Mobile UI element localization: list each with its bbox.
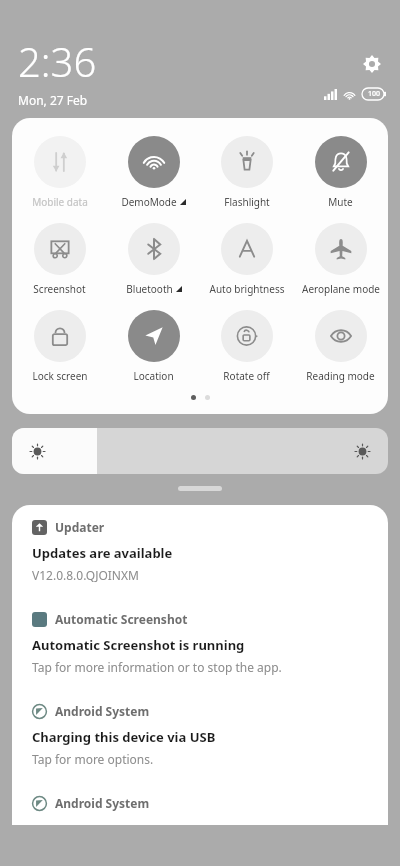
staticText: Flashlight [224, 195, 270, 209]
button[interactable]: DemoMode [107, 134, 200, 211]
button[interactable]: Automatic Screenshot [12, 597, 388, 689]
staticText: Tap for more options. [32, 751, 154, 767]
button[interactable]: Mute [294, 134, 387, 211]
staticText: Screenshot [33, 282, 86, 296]
staticText: Bluetooth [126, 282, 173, 296]
staticText: 100 [368, 89, 381, 99]
staticText: V12.0.8.0.QJOINXM [32, 567, 139, 583]
button[interactable]: Rotate off [200, 308, 293, 385]
button[interactable]: Mobile data [13, 134, 106, 211]
button[interactable]: Settings [358, 50, 386, 78]
staticText: Automatic Screenshot [55, 611, 188, 627]
button[interactable]: Screenshot [13, 221, 106, 298]
staticText: Mon, 27 Feb [18, 92, 88, 108]
button[interactable]: Android System [12, 689, 388, 781]
button[interactable]: Flashlight [200, 134, 293, 211]
staticText: Android System [55, 703, 150, 719]
staticText: Updater [55, 519, 105, 535]
staticText: Auto brightness [209, 282, 285, 296]
staticText: Mute [328, 195, 353, 209]
staticText: Aeroplane mode [302, 282, 380, 296]
button[interactable]: Auto brightness [200, 221, 293, 298]
button[interactable]: Location [107, 308, 200, 385]
staticText: DemoMode [121, 195, 177, 209]
button[interactable]: Android System [12, 781, 388, 825]
staticText: Reading mode [306, 369, 375, 383]
button[interactable]: Aeroplane mode [294, 221, 387, 298]
staticText: Rotate off [223, 369, 270, 383]
button[interactable]: Bluetooth [107, 221, 200, 298]
button[interactable]: Reading mode [294, 308, 387, 385]
staticText: Tap for more information or to stop the … [32, 659, 282, 675]
staticText: Android System [55, 795, 150, 811]
staticText: Charging this device via USB [32, 728, 216, 746]
staticText: Lock screen [32, 369, 88, 383]
staticText: Location [133, 369, 174, 383]
button[interactable]: Brightness [12, 428, 388, 474]
staticText: Automatic Screenshot is running [32, 636, 245, 654]
staticText: 2:36 [18, 34, 97, 88]
button[interactable]: Updater [12, 505, 388, 597]
staticText: Updates are available [32, 544, 173, 562]
button[interactable]: Lock screen [13, 308, 106, 385]
staticText: Mobile data [32, 195, 88, 209]
